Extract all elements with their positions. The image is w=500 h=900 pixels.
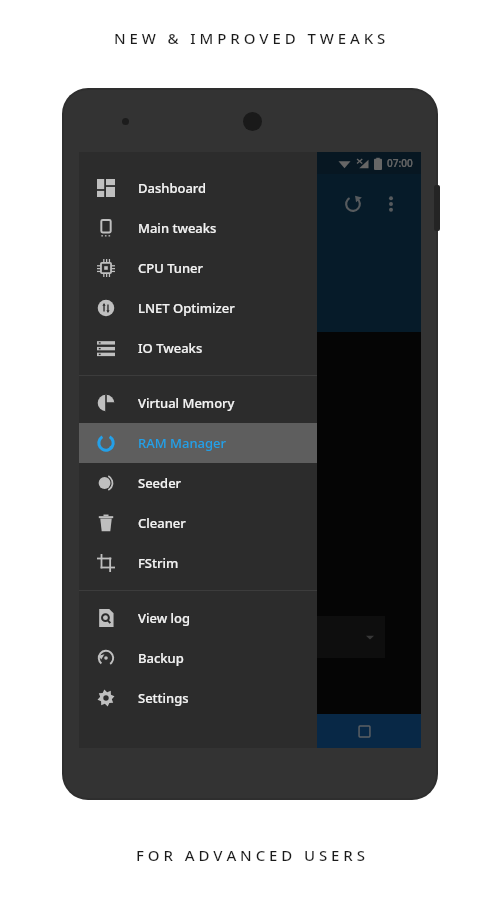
staticText: LNET Optimizer (138, 299, 235, 317)
staticText: Settings (138, 689, 189, 707)
staticText: Backup (138, 649, 184, 667)
button[interactable]: Seeder (79, 463, 317, 503)
button[interactable]: More options (375, 188, 407, 220)
button[interactable]: RAM Manager (79, 423, 317, 463)
staticText: IO Tweaks (138, 339, 203, 357)
button[interactable]: LNET Optimizer (79, 288, 317, 328)
staticText: View log (138, 609, 191, 627)
button[interactable]: IO Tweaks (79, 328, 317, 368)
staticText: RAM Manager (138, 434, 227, 452)
button[interactable]: Cleaner (79, 503, 317, 543)
staticText: CPU Tuner (138, 259, 204, 277)
button[interactable]: Virtual Memory (79, 383, 317, 423)
staticText: N E W & I M P R O V E D T W E A K S (114, 28, 386, 48)
staticText: Dashboard (138, 179, 207, 197)
staticText: FStrim (138, 554, 179, 572)
button[interactable]: CPU Tuner (79, 248, 317, 288)
button[interactable]: FStrim (79, 543, 317, 583)
staticText: F O R A D V A N C E D U S E R S (136, 845, 365, 865)
button[interactable]: fault (277, 616, 385, 658)
staticText: Virtual Memory (138, 394, 235, 412)
button[interactable]: Backup (79, 638, 317, 678)
button[interactable]: Recents (307, 714, 421, 748)
button[interactable]: Main tweaks (79, 208, 317, 248)
staticText: Seeder (138, 474, 182, 492)
staticText: 07:00 (387, 156, 413, 170)
button[interactable]: Refresh (337, 188, 369, 220)
staticText: Main tweaks (138, 219, 217, 237)
button[interactable]: View log (79, 598, 317, 638)
button[interactable]: Dashboard (79, 168, 317, 208)
button[interactable]: Settings (79, 678, 317, 718)
staticText: Cleaner (138, 514, 186, 532)
